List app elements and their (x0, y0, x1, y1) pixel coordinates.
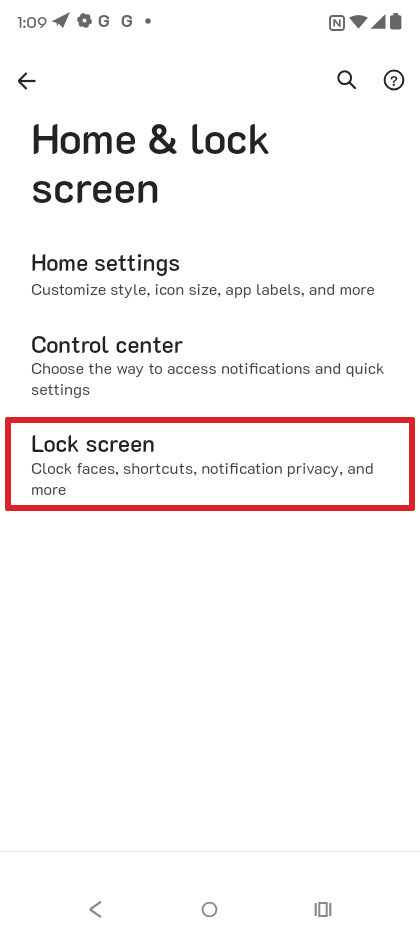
button[interactable]: Home settings (0, 240, 420, 315)
staticText: 1:09 (17, 11, 48, 32)
button[interactable] (330, 63, 362, 95)
staticText: G (121, 9, 133, 31)
staticText: Choose the way to access notifications a… (31, 357, 385, 399)
button[interactable]: Lock screen (5, 417, 415, 511)
staticText: Clock faces, shortcuts, notification pri… (31, 457, 374, 499)
staticText: Lock screen (31, 428, 156, 458)
button[interactable] (175, 880, 245, 933)
staticText: G (98, 9, 110, 31)
button[interactable] (60, 880, 130, 933)
button[interactable]: Control center (0, 322, 420, 412)
button[interactable] (288, 880, 358, 933)
button[interactable] (11, 65, 43, 97)
staticText: ? (390, 71, 398, 89)
staticText: Customize style, icon size, app labels, … (31, 278, 375, 299)
staticText: Control center (31, 329, 184, 359)
staticText: Home & lock screen (31, 109, 271, 213)
button[interactable]: ? (378, 64, 410, 96)
staticText: Home settings (31, 247, 181, 277)
